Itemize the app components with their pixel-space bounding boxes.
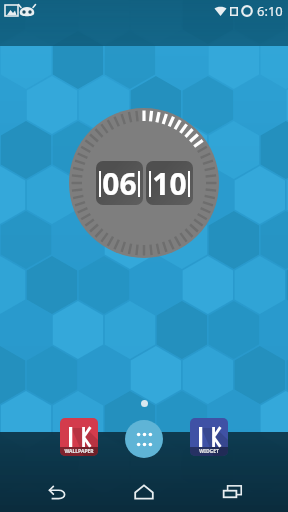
button[interactable]: Home xyxy=(112,472,176,512)
staticText: WIDGET xyxy=(199,448,219,455)
button[interactable]: Recents xyxy=(200,472,264,512)
button[interactable]: Kustom Widget xyxy=(190,418,228,456)
button[interactable]: Kustom Wallpaper xyxy=(60,418,98,456)
button[interactable]: Apps xyxy=(125,420,163,458)
button[interactable]: Clock widget xyxy=(69,108,219,258)
staticText: 06 xyxy=(102,163,137,204)
button[interactable]: Back xyxy=(24,472,88,512)
staticText: WALLPAPER xyxy=(64,448,94,455)
staticText: 10 xyxy=(152,163,187,204)
staticText: 6:10 xyxy=(257,2,283,20)
